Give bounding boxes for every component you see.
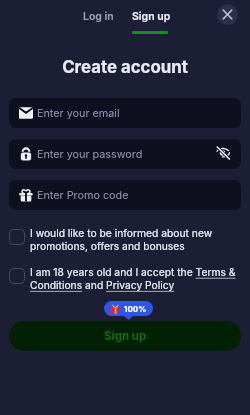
staticText: Enter your email: [37, 107, 120, 120]
staticText: I am 18 years old and I accept the Terms…: [30, 266, 237, 292]
button[interactable]: I am 18 years old and I accept the Terms…: [9, 266, 237, 292]
staticText: Sign up: [132, 10, 171, 23]
button[interactable]: Enter Promo code: [9, 180, 241, 210]
button[interactable]: I would like to be informed about new pr…: [9, 227, 237, 253]
staticText: Enter Promo code: [37, 189, 129, 202]
button[interactable]: Sign up: [132, 10, 171, 23]
button[interactable]: Enter your password: [9, 139, 241, 169]
staticText: Log in: [83, 10, 114, 23]
button[interactable]: Close: [217, 4, 238, 25]
staticText: I would like to be informed about new pr…: [30, 227, 237, 253]
button[interactable]: Toggle password visibility: [215, 145, 231, 161]
staticText: Create account: [0, 57, 250, 77]
button[interactable]: Log in: [83, 10, 114, 23]
staticText: Sign up: [104, 329, 147, 343]
staticText: Enter your password: [37, 148, 143, 161]
button[interactable]: Enter your email: [9, 98, 241, 128]
staticText: 100%: [124, 304, 147, 314]
button[interactable]: Sign up: [9, 321, 241, 351]
